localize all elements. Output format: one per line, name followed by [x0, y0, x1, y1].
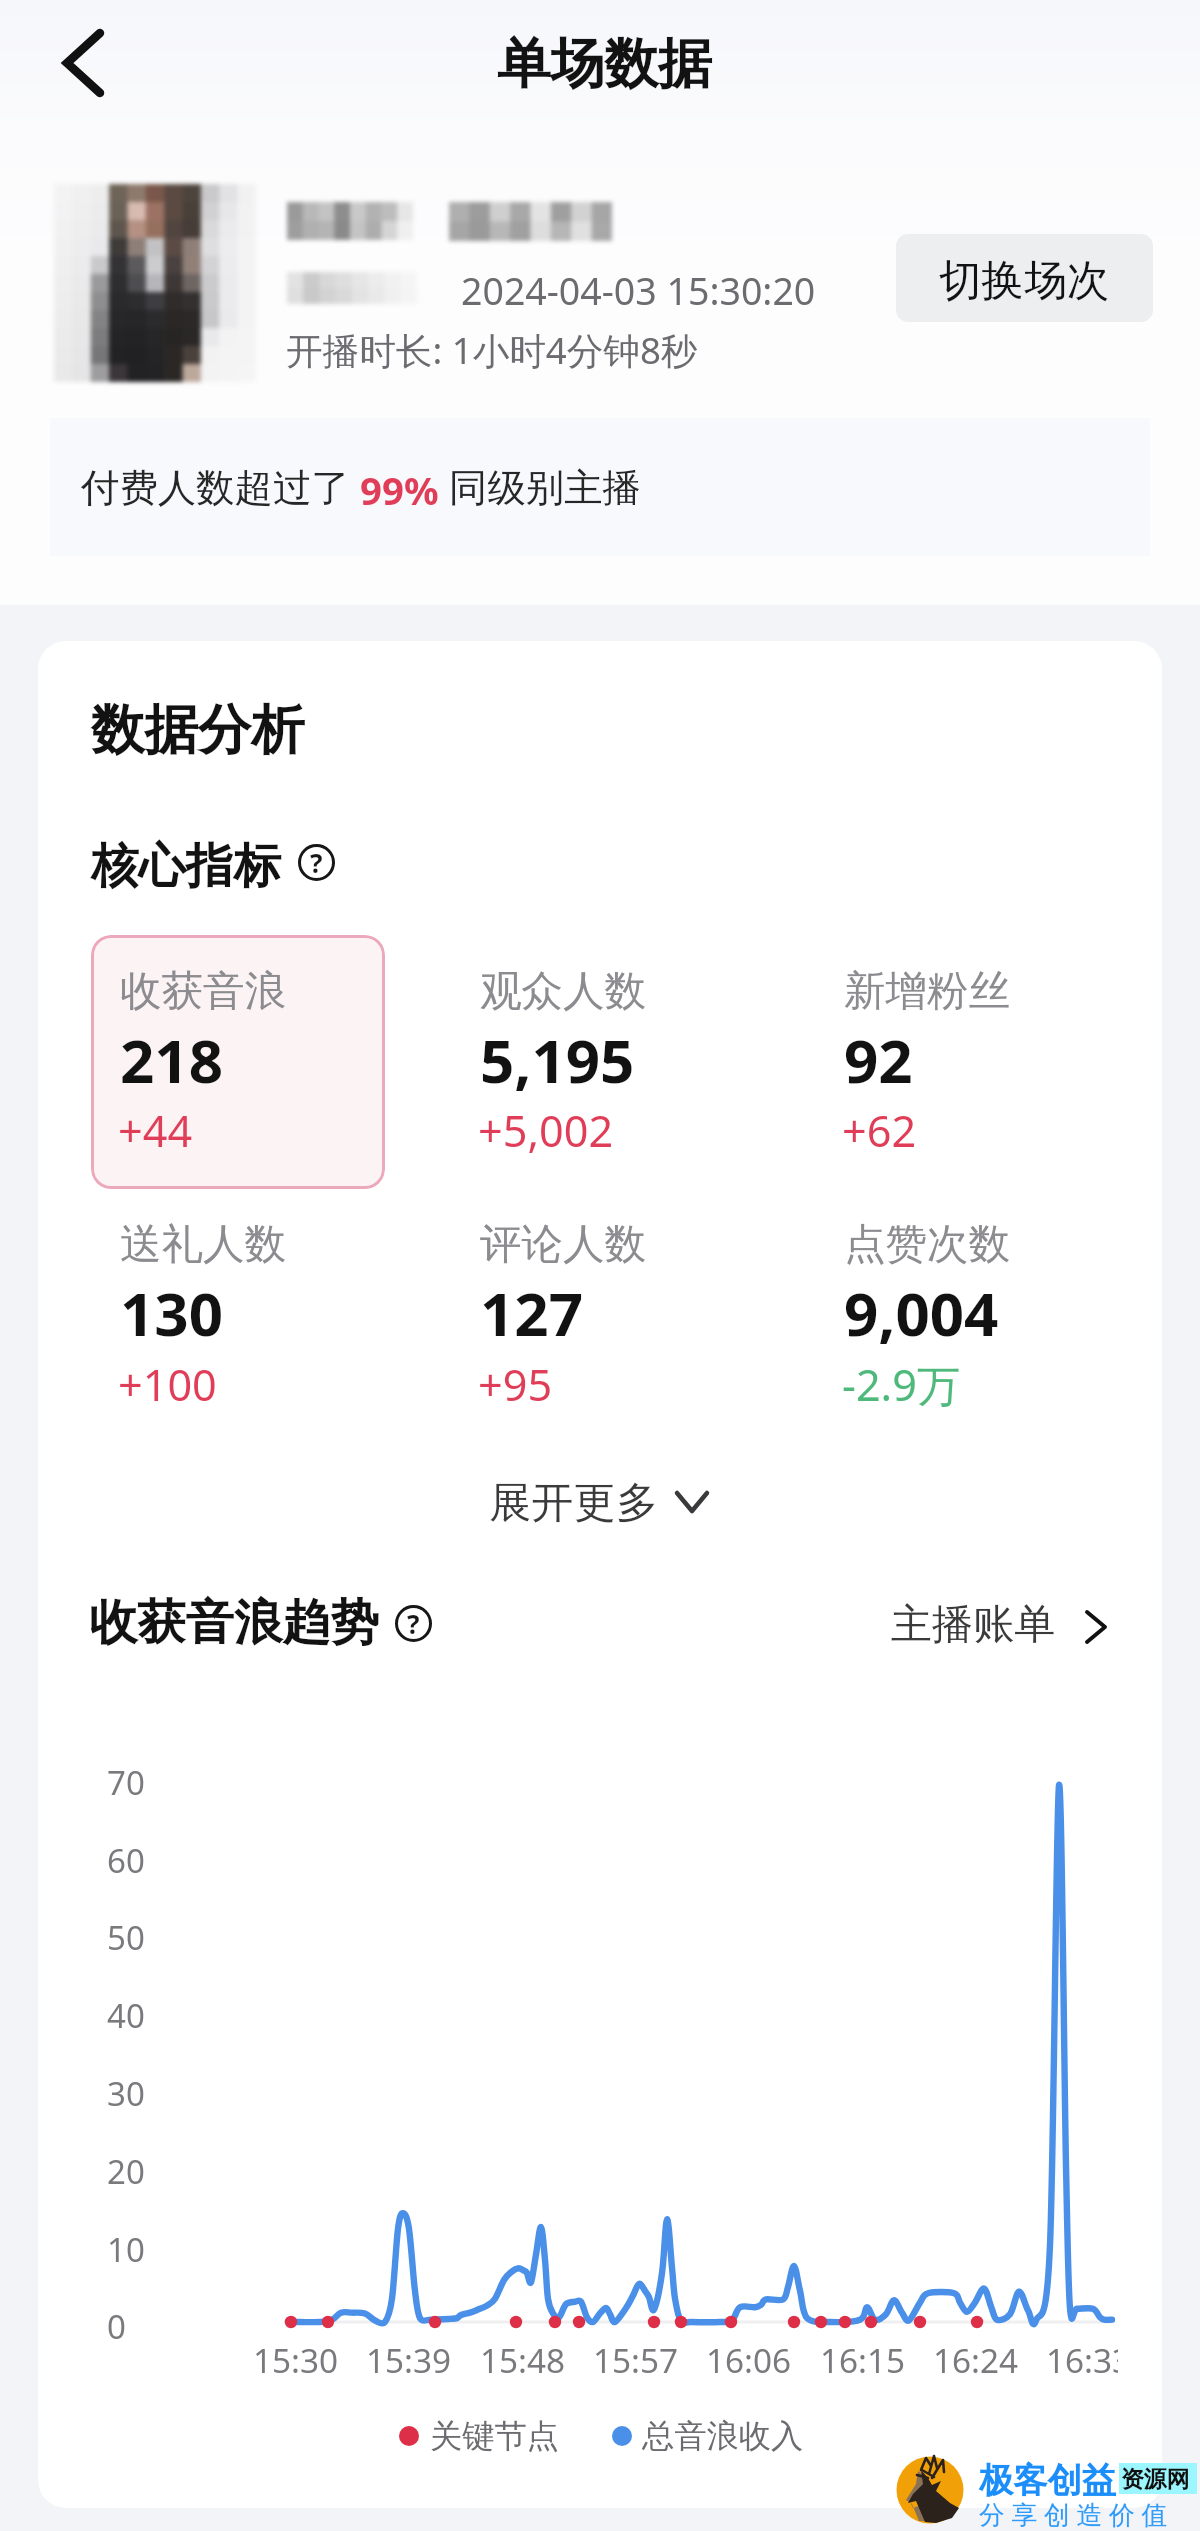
staticText: 极客创益	[979, 2459, 1116, 2502]
button[interactable]	[110, 957, 350, 1157]
staticText: 关键节点	[430, 2416, 559, 2457]
staticText: 9,004	[844, 1272, 999, 1354]
staticText: +44	[118, 1101, 193, 1160]
staticText: 收获音浪趋势	[89, 1592, 379, 1653]
button[interactable]	[470, 957, 710, 1157]
staticText: 16:24	[933, 2337, 1019, 2382]
staticText: 15:48	[480, 2337, 566, 2382]
staticText: 92	[844, 1019, 913, 1101]
staticText: 同级别主播	[449, 464, 641, 512]
staticText: 60	[107, 1838, 145, 1883]
staticText: 20	[107, 2149, 145, 2194]
staticText: 15:57	[593, 2337, 679, 2382]
staticText: +62	[842, 1101, 917, 1160]
staticText: 核心指标	[91, 836, 281, 896]
staticText: 付费人数超过了	[81, 464, 350, 512]
staticText: 新增粉丝	[844, 965, 1011, 1017]
staticText: 40	[107, 1993, 145, 2038]
staticText: 15:30	[253, 2337, 339, 2382]
staticText: 资源网	[1121, 2465, 1190, 2494]
staticText: 5,195	[480, 1019, 635, 1101]
staticText: 10	[107, 2227, 145, 2272]
staticText: 收获音浪	[120, 965, 287, 1017]
staticText: +95	[478, 1355, 553, 1414]
staticText: 观众人数	[480, 965, 647, 1017]
button[interactable]	[834, 957, 1074, 1157]
staticText: 点赞次数	[844, 1218, 1011, 1270]
staticText: 单场数据	[497, 30, 712, 98]
staticText: -2.9万	[842, 1355, 961, 1414]
button[interactable]	[470, 1210, 710, 1410]
staticText: 16:33	[1046, 2337, 1118, 2382]
staticText: 99%	[350, 464, 449, 516]
staticText: 30	[107, 2071, 145, 2116]
staticText: +5,002	[478, 1101, 614, 1160]
staticText: 分 享 创 造 价 值	[979, 2496, 1168, 2531]
staticText: ?	[407, 1606, 420, 1642]
staticText: 展开更多	[489, 1476, 659, 1529]
staticText: 开播时长: 1小时4分钟8秒	[286, 325, 698, 375]
button[interactable]	[880, 1590, 1120, 1660]
staticText: 总音浪收入	[642, 2416, 804, 2457]
staticText: 评论人数	[480, 1218, 647, 1270]
button[interactable]: Back	[28, 18, 138, 108]
button[interactable]	[110, 1210, 350, 1410]
staticText: ?	[310, 845, 323, 881]
staticText: 主播账单	[891, 1598, 1056, 1650]
staticText: 127	[480, 1272, 583, 1354]
staticText: 数据分析	[91, 697, 305, 764]
staticText: 15:39	[366, 2337, 452, 2382]
button[interactable]	[460, 1460, 740, 1540]
staticText: 50	[107, 1915, 145, 1960]
staticText: 0	[107, 2304, 126, 2349]
staticText: 70	[107, 1760, 145, 1805]
staticText: 16:15	[820, 2337, 906, 2382]
staticText: 送礼人数	[120, 1218, 287, 1270]
staticText: +100	[118, 1355, 217, 1414]
staticText: 切换场次	[939, 254, 1110, 308]
staticText: 130	[120, 1272, 223, 1354]
button[interactable]: 切换场次	[896, 234, 1153, 322]
staticText: 2024-04-03 15:30:20	[461, 265, 816, 316]
button[interactable]	[834, 1210, 1074, 1410]
staticText: 16:06	[706, 2337, 792, 2382]
staticText: 218	[120, 1019, 223, 1101]
button[interactable]	[91, 935, 385, 1189]
